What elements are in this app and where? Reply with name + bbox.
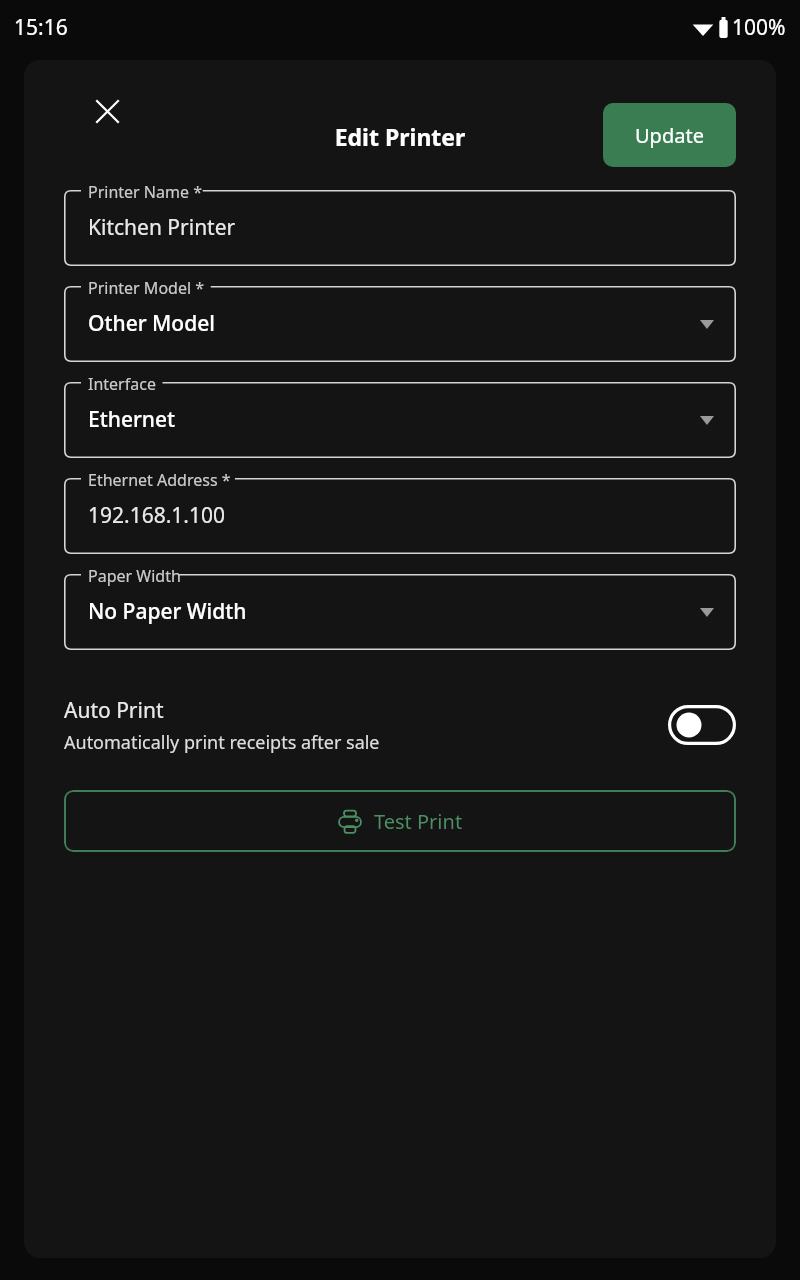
button[interactable]: Ethernet Address * [64,478,736,554]
staticText: Auto Print [64,696,164,725]
button[interactable]: Printer Name * [64,190,736,266]
button[interactable]: Update [603,103,736,167]
staticText: 192.168.1.100 [88,501,226,530]
staticText: Kitchen Printer [88,213,236,242]
staticText: Ethernet [88,405,176,434]
staticText: 100% [732,13,786,42]
staticText: No Paper Width [88,597,247,626]
staticText: Test Print [374,808,463,835]
staticText: 15:16 [14,13,68,42]
button[interactable]: Printer Model * [64,286,736,362]
staticText: Printer Name * [88,181,202,203]
staticText: Automatically print receipts after sale [64,730,380,755]
staticText: Ethernet Address * [88,469,231,491]
button[interactable]: Close [83,87,131,135]
staticText: Update [635,122,704,149]
staticText: Edit Printer [24,121,776,152]
button[interactable]: Paper Width [64,574,736,650]
button[interactable]: Test Print [64,790,736,852]
button[interactable]: Auto Print toggle [668,705,736,745]
button[interactable]: Interface [64,382,736,458]
staticText: Paper Width [88,565,181,587]
staticText: Interface [88,373,156,395]
staticText: Other Model [88,309,215,338]
staticText: Printer Model * [88,277,205,299]
